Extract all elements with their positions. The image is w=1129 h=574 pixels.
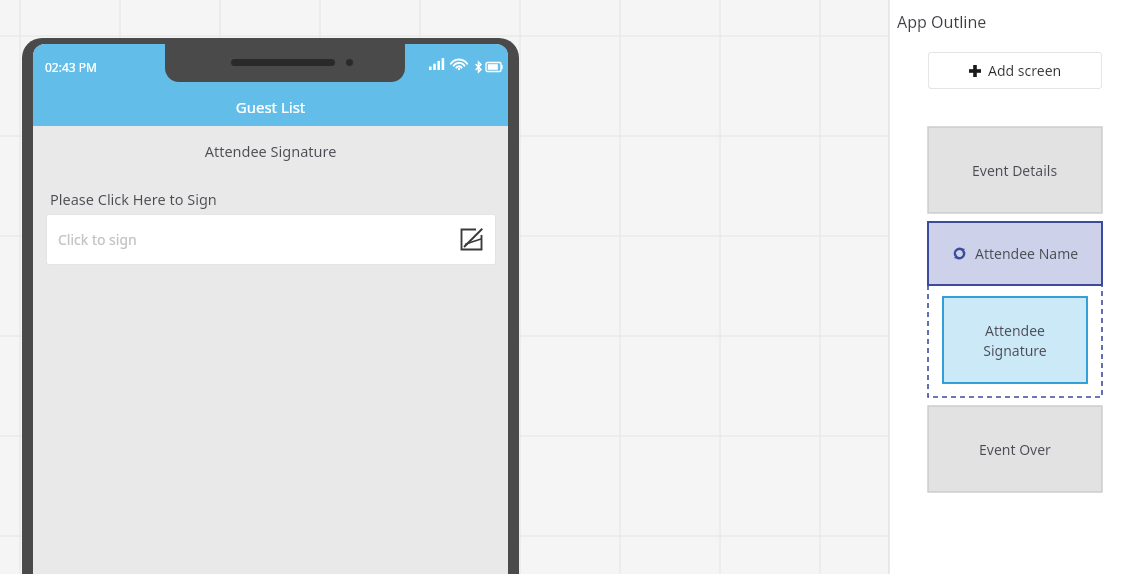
button[interactable]: Event Over bbox=[928, 406, 1102, 492]
staticText: Guest List bbox=[33, 97, 508, 117]
other: Sign bbox=[459, 227, 484, 252]
staticText: Add screen bbox=[988, 61, 1062, 80]
staticText: Attendee Signature bbox=[983, 321, 1047, 360]
staticText: Attendee Signature bbox=[33, 141, 508, 161]
button[interactable]: Click to sign bbox=[46, 214, 496, 265]
button[interactable]: Add screen bbox=[928, 52, 1102, 89]
staticText: 02:43 PM bbox=[45, 59, 97, 75]
staticText: Event Details bbox=[972, 161, 1058, 180]
staticText: Event Over bbox=[979, 440, 1051, 459]
staticText: Click to sign bbox=[58, 230, 137, 249]
staticText: Attendee Name bbox=[975, 244, 1079, 263]
staticText: Please Click Here to Sign bbox=[50, 189, 217, 209]
button[interactable]: Attendee Signature bbox=[943, 297, 1087, 383]
button[interactable]: Event Details bbox=[928, 127, 1102, 213]
button[interactable]: Attendee Name bbox=[928, 222, 1102, 285]
staticText: App Outline bbox=[897, 11, 987, 33]
